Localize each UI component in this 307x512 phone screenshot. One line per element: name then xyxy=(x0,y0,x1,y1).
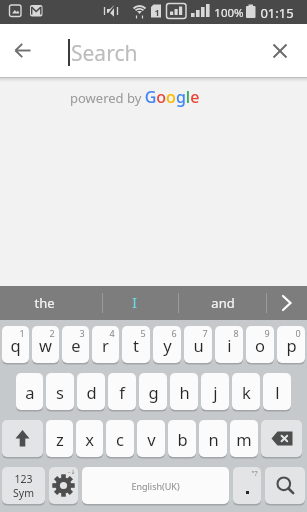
staticText: u xyxy=(193,334,204,356)
staticText: d xyxy=(86,381,97,403)
button[interactable]: m xyxy=(230,420,258,457)
staticText: 7 xyxy=(202,327,208,339)
staticText: b xyxy=(177,428,188,450)
staticText: o xyxy=(255,334,265,356)
staticText: x xyxy=(85,428,94,450)
staticText: 01:15 xyxy=(260,4,294,22)
staticText: 3 xyxy=(79,327,85,339)
button[interactable]: 2 xyxy=(32,326,59,363)
button[interactable]: 5 xyxy=(122,326,150,363)
button[interactable]: h xyxy=(170,373,198,410)
button[interactable]: 7 xyxy=(184,326,212,363)
button[interactable]: s xyxy=(46,373,74,410)
staticText: 5 xyxy=(140,327,146,339)
staticText: Search xyxy=(71,39,138,68)
button[interactable] xyxy=(261,420,302,457)
staticText: f xyxy=(119,381,125,403)
staticText: j xyxy=(213,381,218,403)
staticText: ''? xyxy=(251,469,258,479)
button[interactable]: v xyxy=(137,420,165,457)
staticText: 6 xyxy=(171,327,177,339)
button[interactable]: n xyxy=(199,420,227,457)
button[interactable] xyxy=(2,420,43,457)
button[interactable]: x xyxy=(76,420,103,457)
button[interactable]: k xyxy=(232,373,260,410)
staticText: 1 xyxy=(154,6,160,18)
button[interactable]: d xyxy=(77,373,105,410)
staticText: g xyxy=(148,381,159,403)
staticText: 100% xyxy=(214,5,244,21)
staticText: 2 xyxy=(49,327,55,339)
button[interactable]: the xyxy=(0,286,102,320)
button[interactable]: English(UK) xyxy=(82,467,229,504)
button[interactable]: 0 xyxy=(277,326,305,363)
button[interactable]: 123 xyxy=(2,467,45,504)
staticText: c xyxy=(116,428,124,450)
staticText: I xyxy=(132,294,137,312)
button[interactable]: 6 xyxy=(153,326,181,363)
button[interactable]: 4 xyxy=(92,326,119,363)
button[interactable]: j xyxy=(201,373,229,410)
staticText: s xyxy=(56,381,64,403)
staticText: powered by Google xyxy=(70,86,200,108)
button[interactable]: l xyxy=(263,373,291,410)
staticText: English(UK) xyxy=(131,480,180,492)
staticText: w xyxy=(39,334,52,356)
staticText: m xyxy=(236,428,252,450)
button[interactable]: and xyxy=(179,286,266,320)
staticText: l xyxy=(275,381,280,403)
button[interactable] xyxy=(15,43,31,58)
button[interactable] xyxy=(267,286,307,320)
button[interactable]: g xyxy=(139,373,167,410)
staticText: 8 xyxy=(233,327,239,339)
staticText: 1 xyxy=(19,327,25,339)
button[interactable]: 9 xyxy=(246,326,274,363)
staticText: 0 xyxy=(295,327,301,339)
staticText: q xyxy=(10,334,21,356)
staticText: n xyxy=(208,428,219,450)
button[interactable]: f xyxy=(108,373,136,410)
staticText: e xyxy=(71,334,81,356)
button[interactable]: 8 xyxy=(215,326,243,363)
staticText: v xyxy=(147,428,156,450)
staticText: Sym xyxy=(13,486,34,500)
button[interactable]: 3 xyxy=(62,326,89,363)
button[interactable]: c xyxy=(106,420,134,457)
staticText: y xyxy=(163,334,172,356)
staticText: a xyxy=(25,381,35,403)
staticText: i xyxy=(227,334,232,356)
staticText: z xyxy=(56,428,64,450)
staticText: 9 xyxy=(264,327,270,339)
button[interactable] xyxy=(265,467,305,504)
staticText: k xyxy=(242,381,251,403)
staticText: ··↓ xyxy=(67,468,76,476)
button[interactable]: ··↓ xyxy=(49,467,78,504)
staticText: and xyxy=(211,294,235,312)
staticText: t xyxy=(133,334,139,356)
staticText: 4 xyxy=(109,327,115,339)
staticText: h xyxy=(179,381,190,403)
button[interactable]: b xyxy=(168,420,196,457)
staticText: r xyxy=(102,334,109,356)
button[interactable]: a xyxy=(16,373,43,410)
button[interactable]: 1 xyxy=(2,326,29,363)
button[interactable]: ''? xyxy=(233,467,261,504)
staticText: the xyxy=(34,294,55,312)
button[interactable]: I xyxy=(103,286,178,320)
button[interactable]: z xyxy=(46,420,73,457)
staticText: 123 xyxy=(14,472,33,486)
staticText: p xyxy=(286,334,297,356)
button[interactable] xyxy=(273,44,287,58)
